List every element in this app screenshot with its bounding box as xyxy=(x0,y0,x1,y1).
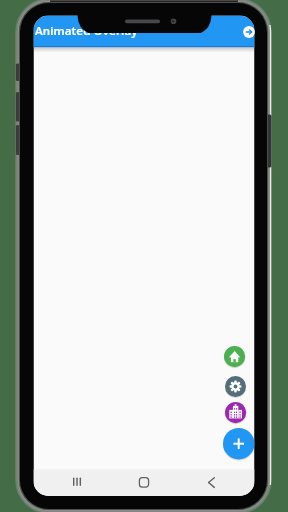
button[interactable] xyxy=(224,346,245,367)
button[interactable] xyxy=(225,402,246,423)
staticText: Animated Overlay xyxy=(35,23,138,39)
button[interactable] xyxy=(225,376,246,397)
button[interactable] xyxy=(203,474,219,490)
button[interactable] xyxy=(136,474,152,490)
button[interactable] xyxy=(223,428,254,459)
button[interactable] xyxy=(69,474,85,490)
button[interactable] xyxy=(243,26,255,38)
